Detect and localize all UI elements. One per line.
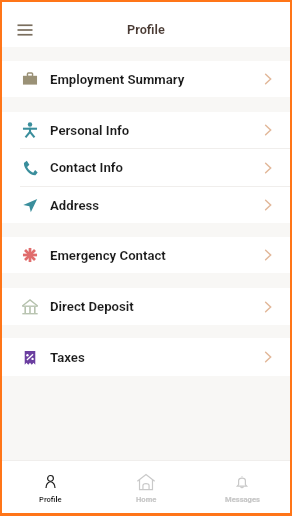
button[interactable]: Personal Info <box>2 112 290 148</box>
staticText: Profile <box>127 22 165 37</box>
staticText: Home <box>136 495 157 504</box>
button[interactable]: Open navigation menu <box>9 15 41 45</box>
button[interactable]: Contact Info <box>2 149 290 186</box>
button[interactable]: Home <box>98 461 194 513</box>
staticText: Personal Info <box>50 123 130 138</box>
staticText: Employment Summary <box>50 72 185 87</box>
button[interactable]: Direct Deposit <box>2 288 290 325</box>
staticText: Contact Info <box>50 160 124 175</box>
button[interactable]: Address <box>2 187 290 223</box>
button[interactable]: Messages <box>194 461 290 513</box>
button[interactable]: Profile <box>2 461 98 513</box>
staticText: Taxes <box>50 350 85 365</box>
button[interactable]: Emergency Contact <box>2 237 290 273</box>
staticText: Profile <box>39 495 62 504</box>
staticText: Emergency Contact <box>50 248 166 263</box>
staticText: Direct Deposit <box>50 299 134 314</box>
staticText: Messages <box>225 495 260 504</box>
button[interactable]: Taxes <box>2 338 290 376</box>
staticText: Address <box>50 198 100 213</box>
button[interactable]: Employment Summary <box>2 61 290 97</box>
